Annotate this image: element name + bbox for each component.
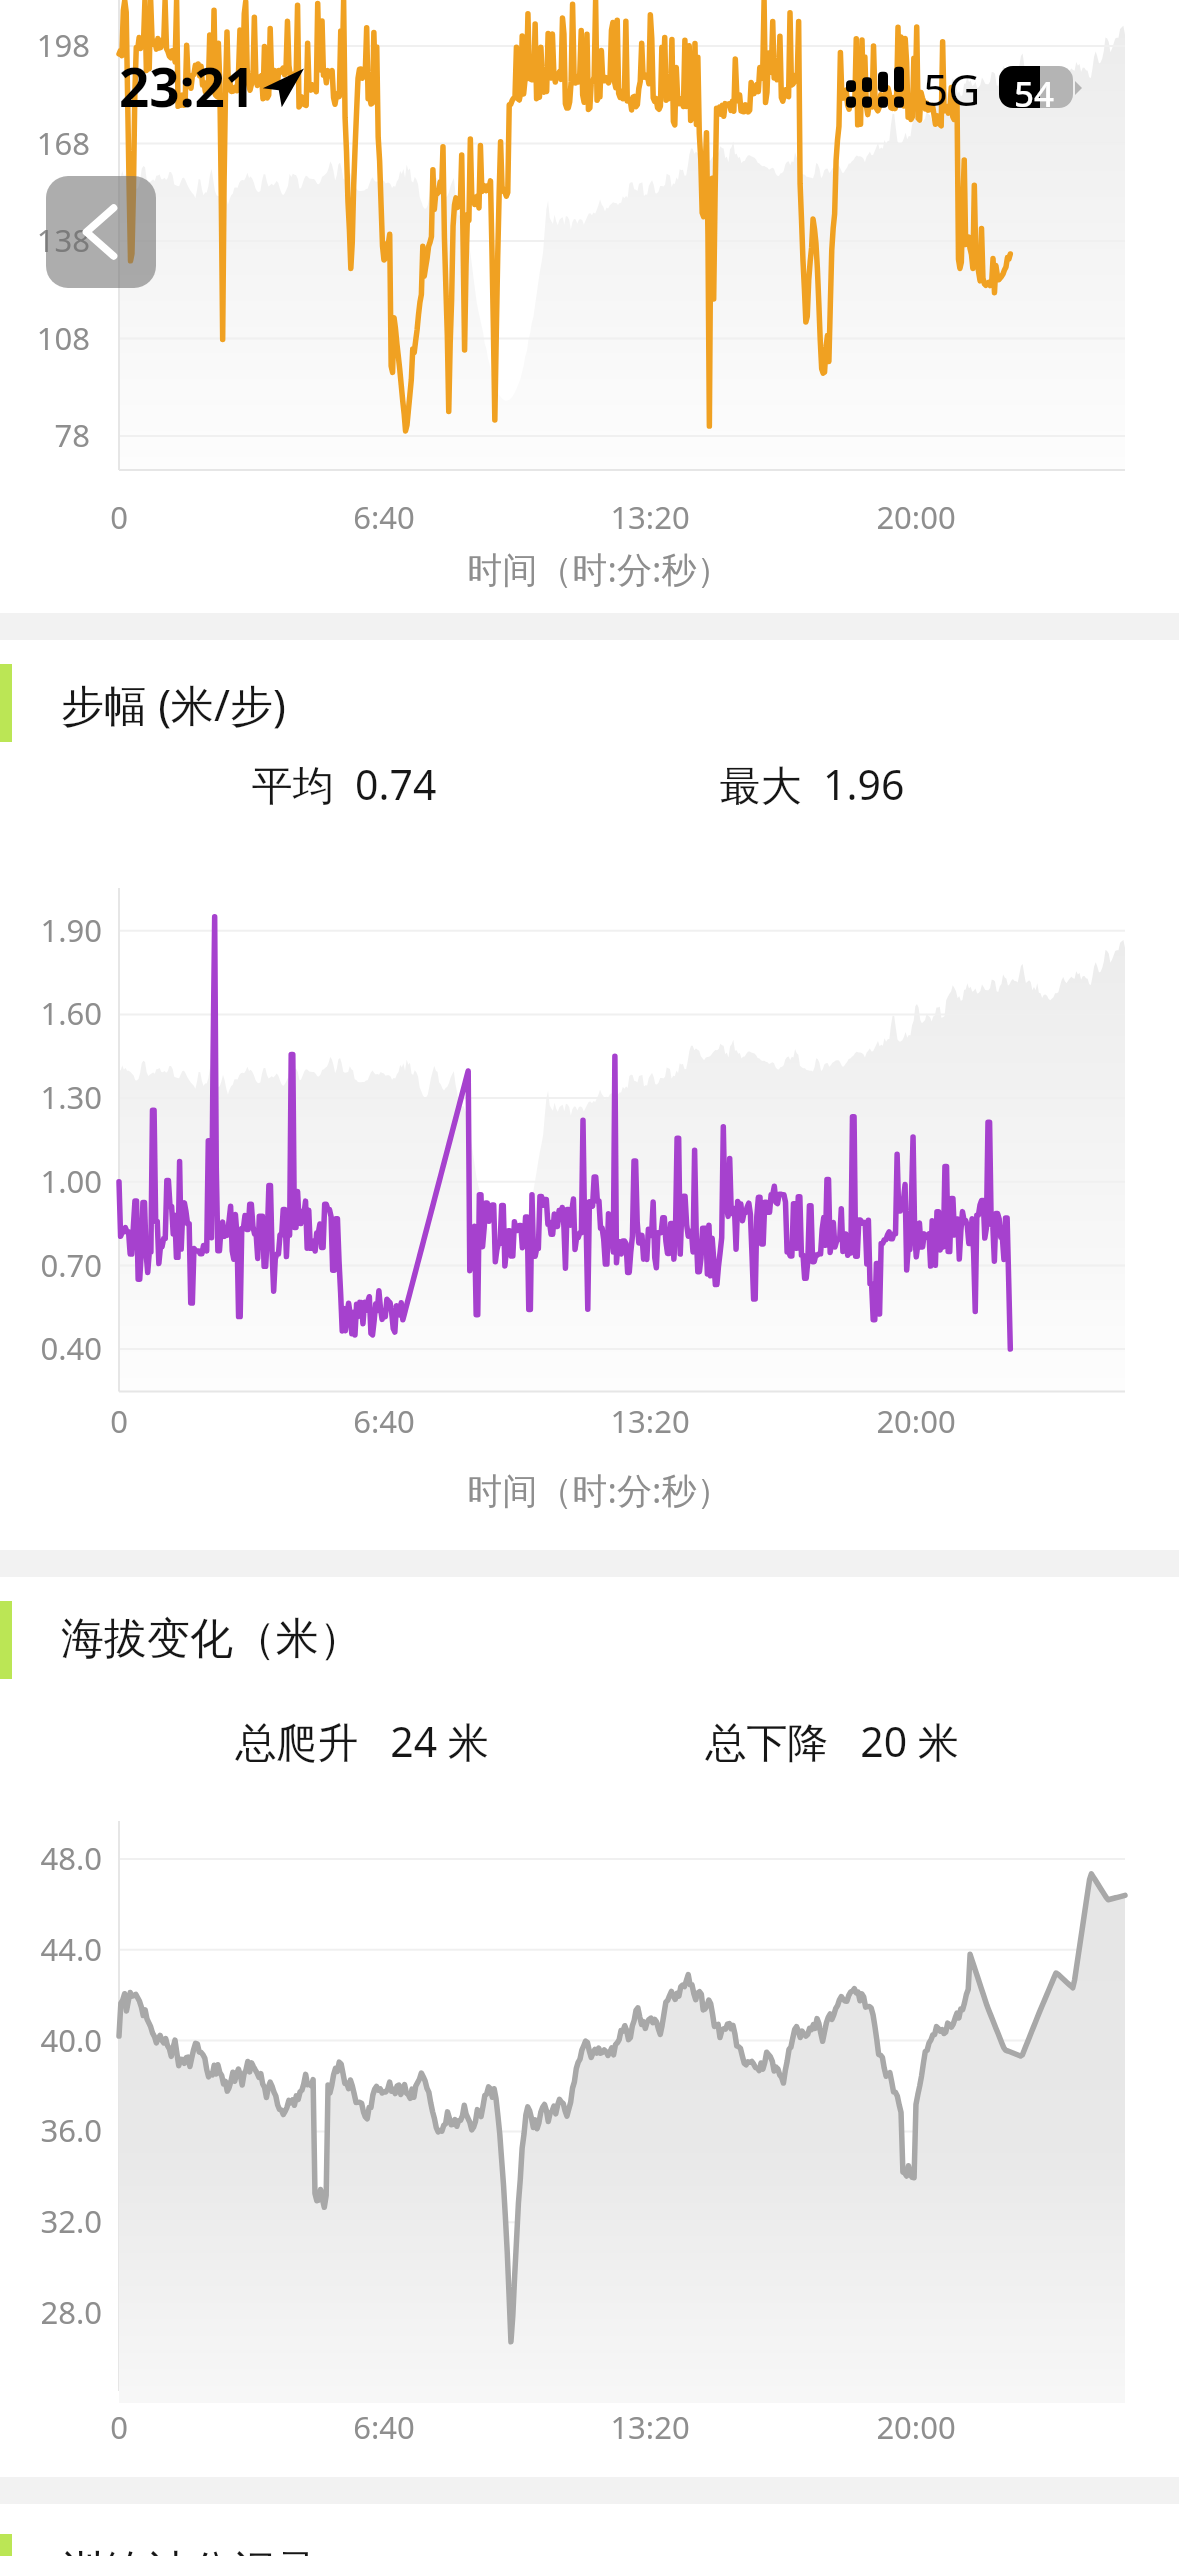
staticText: 1.00 <box>0 1160 102 1202</box>
staticText: 40.0 <box>0 2019 102 2061</box>
other: Battery 54 percent <box>999 66 1073 108</box>
staticText: 0.70 <box>0 1244 102 1286</box>
staticText: 36.0 <box>0 2109 102 2151</box>
other: Cellular signal <box>846 64 904 108</box>
staticText: 步幅 (米/步) <box>61 675 286 734</box>
staticText: 20:00 <box>766 1400 1066 1442</box>
other: Location in use <box>262 66 304 108</box>
staticText: 训练计分记录 <box>61 2545 319 2556</box>
staticText: 28.0 <box>0 2291 102 2333</box>
staticText: 108 <box>0 317 90 359</box>
staticText: 6:40 <box>234 2406 534 2448</box>
staticText: 0 <box>0 1400 269 1442</box>
staticText: 23:21 <box>119 50 256 122</box>
staticText: 总爬升 24 米 <box>62 1713 662 1769</box>
staticText: 时间（时:分:秒） <box>10 545 1179 593</box>
staticText: 78 <box>0 414 90 456</box>
staticText: 138 <box>0 219 90 261</box>
staticText: 6:40 <box>234 1400 534 1442</box>
staticText: 海拔变化（米） <box>61 1612 362 1666</box>
staticText: 32.0 <box>0 2200 102 2242</box>
staticText: 0.40 <box>0 1327 102 1369</box>
staticText: 0 <box>0 496 269 538</box>
staticText: 1.90 <box>0 909 102 951</box>
staticText: 20:00 <box>766 2406 1066 2448</box>
staticText: 13:20 <box>500 1400 800 1442</box>
staticText: 20:00 <box>766 496 1066 538</box>
staticText: 5G <box>923 59 981 119</box>
staticText: 13:20 <box>500 2406 800 2448</box>
staticText: 48.0 <box>0 1837 102 1879</box>
staticText: 44.0 <box>0 1928 102 1970</box>
staticText: 最大 1.96 <box>512 756 1112 812</box>
staticText: 1.30 <box>0 1076 102 1118</box>
staticText: 168 <box>0 122 90 164</box>
staticText: 13:20 <box>500 496 800 538</box>
staticText: 198 <box>0 24 90 66</box>
button[interactable]: Back <box>46 176 156 288</box>
staticText: 1.60 <box>0 992 102 1034</box>
staticText: 54 <box>1014 70 1055 112</box>
staticText: 0 <box>0 2406 269 2448</box>
staticText: 时间（时:分:秒） <box>10 1466 1179 1514</box>
staticText: 总下降 20 米 <box>532 1713 1132 1769</box>
staticText: 6:40 <box>234 496 534 538</box>
staticText: 平均 0.74 <box>44 756 644 812</box>
